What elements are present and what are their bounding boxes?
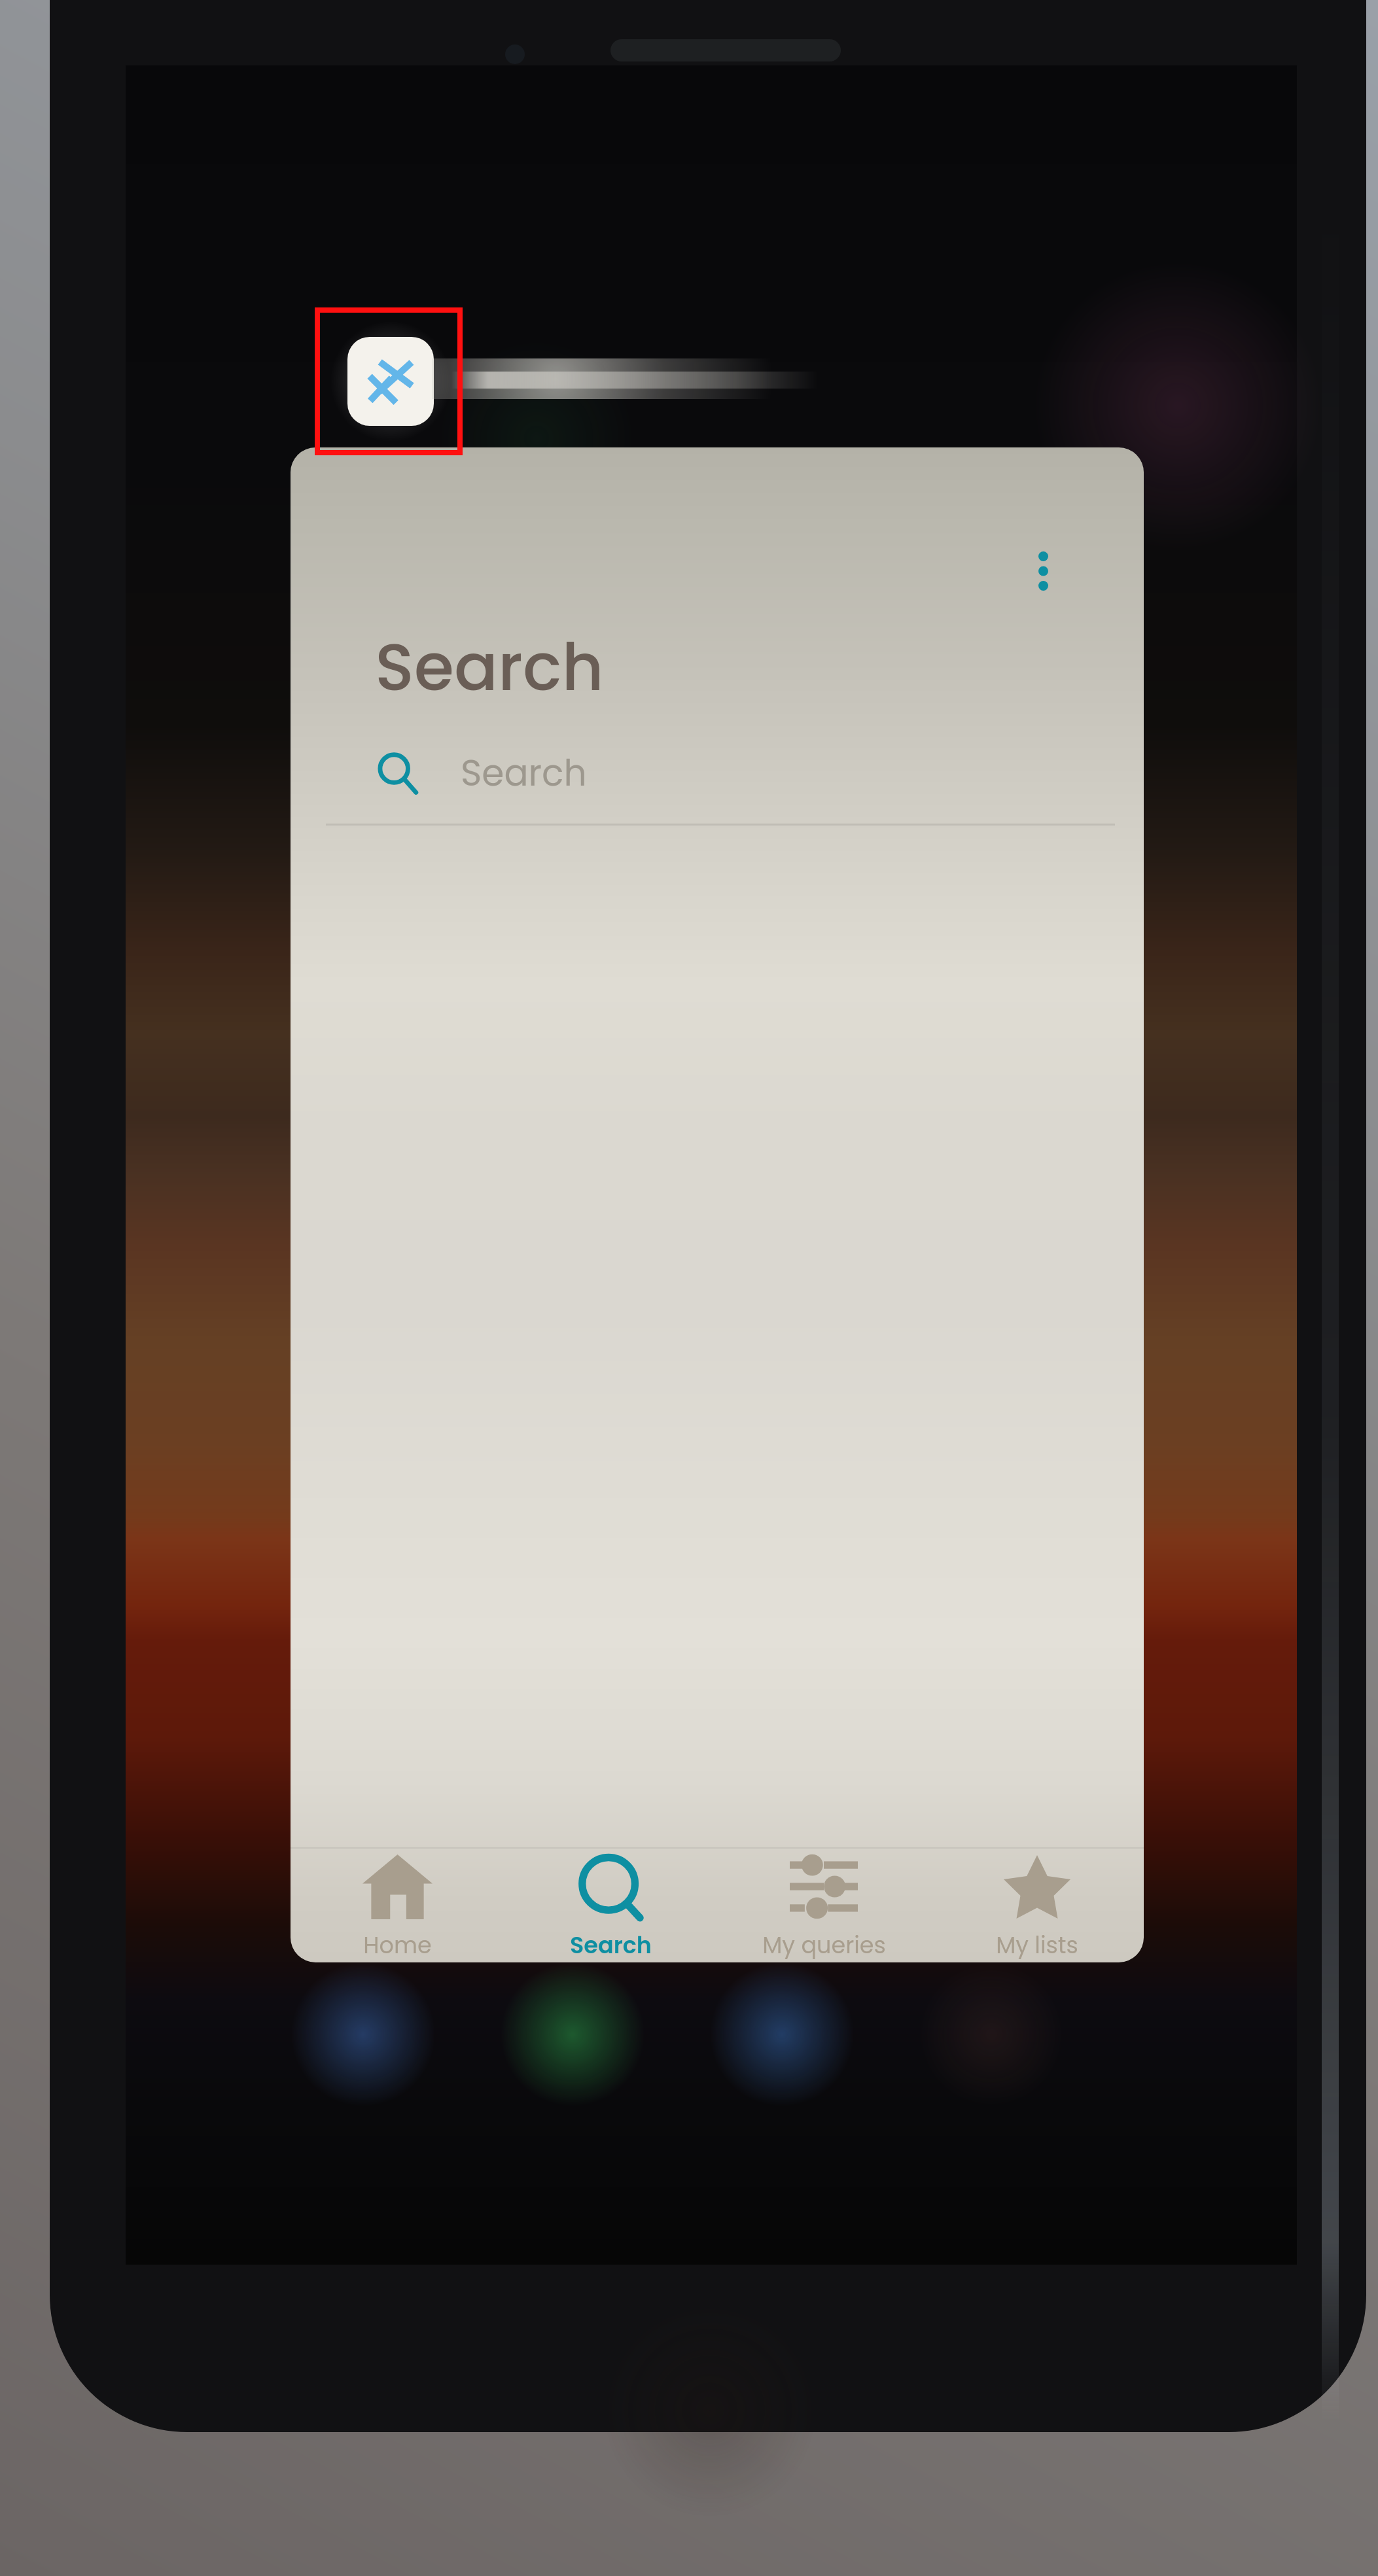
button[interactable]: Search bbox=[326, 708, 1115, 826]
button[interactable]: Home bbox=[291, 1849, 504, 1962]
button[interactable]: My queries bbox=[717, 1849, 930, 1962]
staticText: Home bbox=[363, 1929, 432, 1961]
button[interactable]: Search bbox=[504, 1849, 717, 1962]
staticText: Search bbox=[375, 622, 604, 713]
button[interactable]: My lists bbox=[930, 1849, 1144, 1962]
staticText: My lists bbox=[996, 1929, 1078, 1961]
button[interactable]: More options bbox=[997, 510, 1089, 633]
staticText: My queries bbox=[762, 1929, 886, 1961]
staticText: Search bbox=[461, 748, 587, 798]
staticText: Search bbox=[570, 1929, 652, 1961]
